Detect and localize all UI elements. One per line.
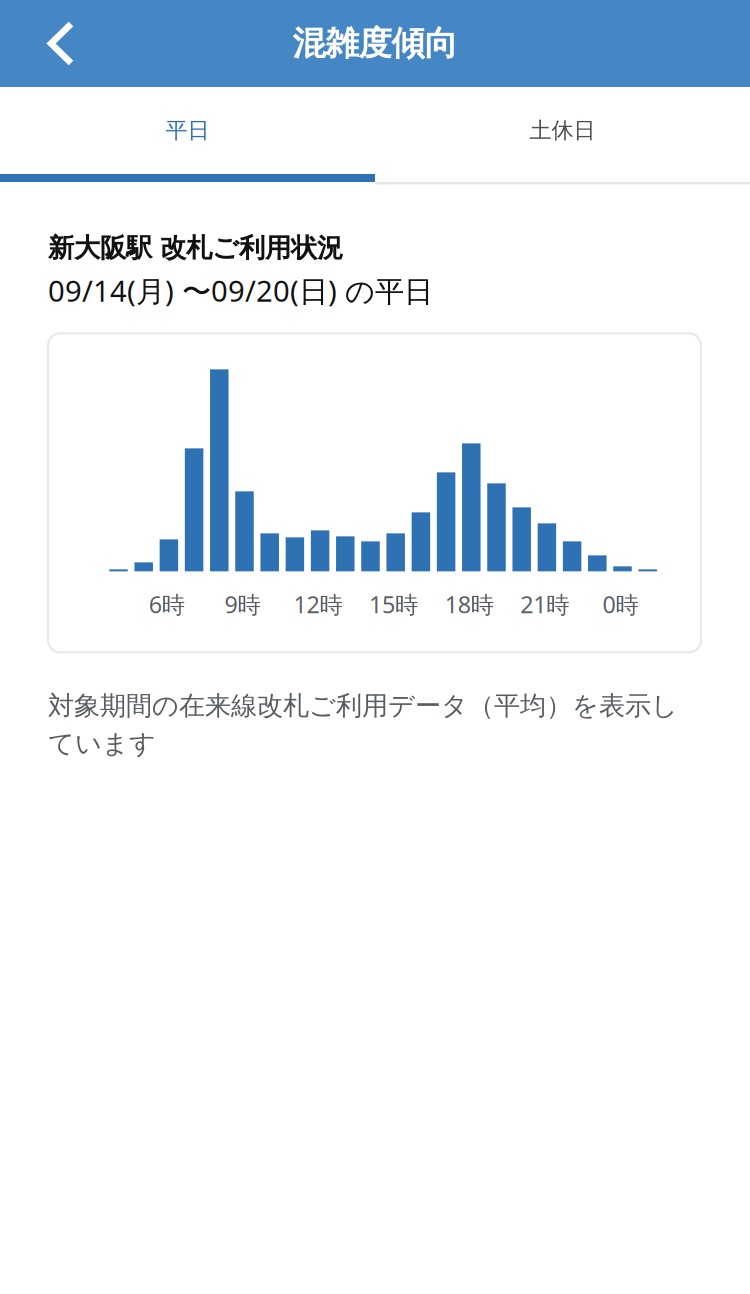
button[interactable]: 土休日 <box>375 87 750 174</box>
staticText: 対象期間の在来線改札ご利用データ（平均）を表示しています <box>48 689 678 760</box>
staticText: 平日 <box>165 117 209 144</box>
staticText: 土休日 <box>529 117 595 144</box>
staticText: 9時 <box>224 588 260 620</box>
staticText: 15時 <box>369 588 418 620</box>
staticText: 18時 <box>445 588 494 620</box>
staticText: 混雑度傾向 <box>292 22 457 64</box>
staticText: 09/14(月) 〜09/20(日) の平日 <box>48 271 433 310</box>
button[interactable]: 平日 <box>0 87 375 174</box>
staticText: 新大阪駅 改札ご利用状況 <box>48 231 343 265</box>
button[interactable]: Back <box>0 0 110 87</box>
staticText: 6時 <box>149 588 185 620</box>
staticText: 21時 <box>520 588 569 620</box>
staticText: 12時 <box>293 588 342 620</box>
staticText: 0時 <box>602 588 638 620</box>
